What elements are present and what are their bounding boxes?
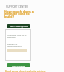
staticText: Read more about website pricing bbox=[5, 70, 46, 72]
button[interactable]: GET A FREE QUOTE bbox=[7, 24, 30, 28]
staticText: Design & development bbox=[7, 42, 29, 48]
staticText: Average cost of a website bbox=[7, 33, 29, 39]
button[interactable]: Get a quote bbox=[7, 63, 30, 67]
staticText: Get a quote bbox=[12, 64, 26, 67]
staticText: GET A FREE QUOTE bbox=[10, 25, 28, 28]
staticText: SUPPORT CENTER bbox=[6, 5, 28, 9]
staticText: How much does a website cost to build? bbox=[4, 9, 34, 19]
